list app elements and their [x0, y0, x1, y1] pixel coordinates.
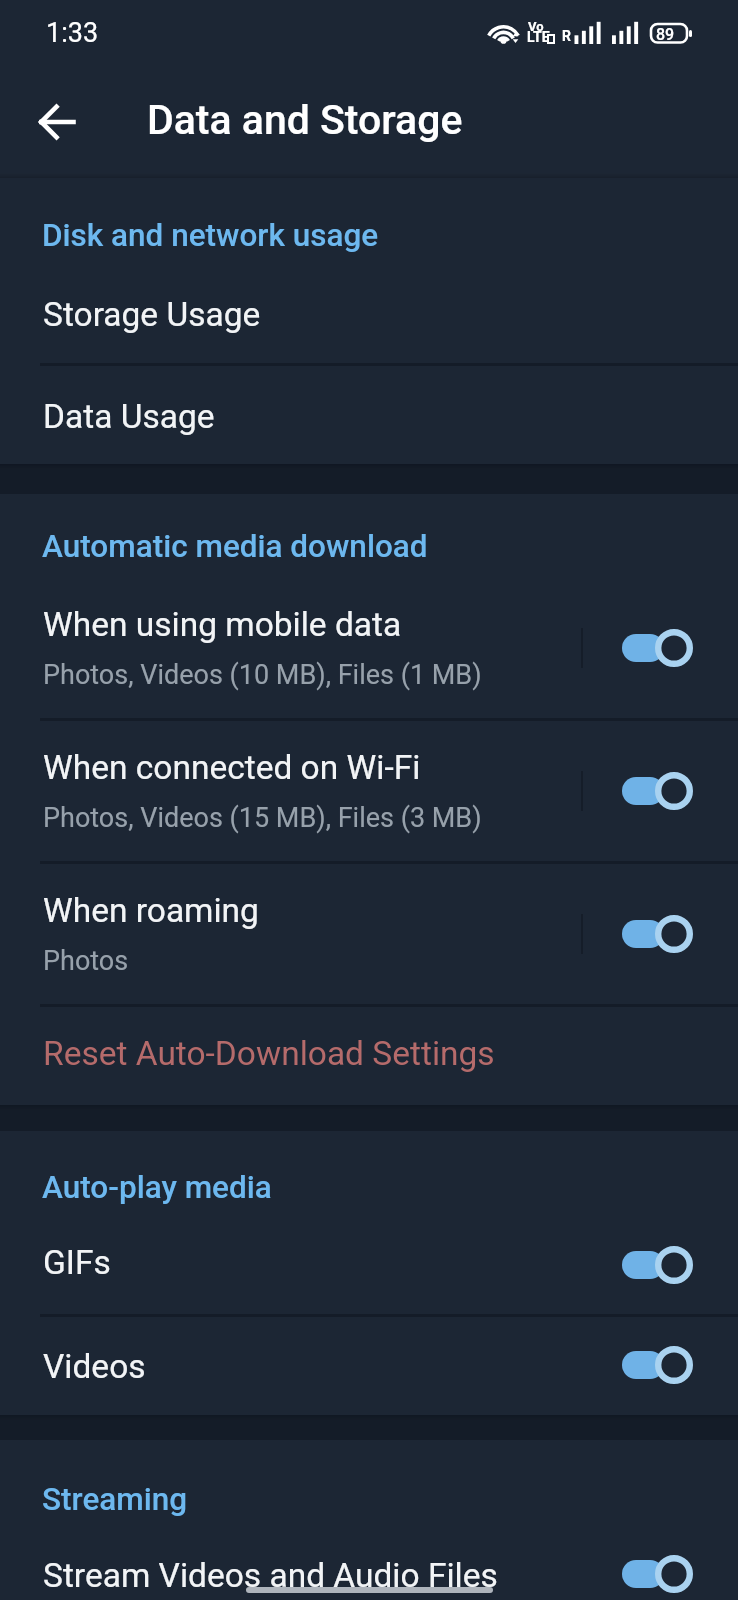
staticText: 1:33 [46, 17, 99, 49]
staticText: GIFs [43, 1243, 622, 1282]
staticText: Streaming [42, 1481, 188, 1518]
button[interactable]: Stream Videos and Audio Files [0, 1524, 738, 1600]
button[interactable]: Stream Videos and Audio Files [622, 1554, 695, 1594]
staticText: LTE [527, 29, 550, 45]
staticText: Stream Videos and Audio Files [43, 1556, 622, 1595]
button[interactable]: GIFs [0, 1215, 738, 1315]
button[interactable]: Reset Auto-Download Settings [0, 1005, 738, 1105]
staticText: Storage Usage [43, 295, 261, 334]
button[interactable]: When roaming [622, 914, 695, 954]
button[interactable]: Storage Usage [0, 264, 738, 364]
button[interactable]: When using mobile data [622, 628, 695, 668]
staticText: Automatic media download [42, 528, 428, 565]
staticText: 89 [656, 25, 675, 44]
button[interactable]: When connected on Wi-Fi [622, 771, 695, 811]
button[interactable]: Data Usage [0, 364, 738, 464]
staticText: When using mobile data [43, 605, 402, 644]
button[interactable]: When connected on Wi-Fi [0, 719, 738, 862]
button[interactable]: Back [20, 85, 94, 159]
button[interactable]: Videos [622, 1345, 695, 1385]
staticText: R [562, 28, 571, 44]
staticText: Reset Auto-Download Settings [43, 1034, 495, 1073]
staticText: When connected on Wi-Fi [43, 748, 421, 787]
staticText: Videos [43, 1347, 622, 1386]
button[interactable]: GIFs [622, 1245, 695, 1285]
staticText: Vo [528, 19, 544, 34]
staticText: Auto-play media [42, 1169, 272, 1206]
button[interactable]: Videos [0, 1315, 738, 1415]
staticText: Data and Storage [147, 96, 463, 144]
staticText: Photos, Videos (10 MB), Files (1 MB) [43, 659, 482, 691]
staticText: When roaming [43, 891, 259, 930]
button[interactable]: When using mobile data [0, 576, 738, 719]
button[interactable]: When roaming [0, 862, 738, 1005]
staticText: Data Usage [43, 397, 215, 436]
staticText: Photos [43, 945, 129, 977]
staticText: Disk and network usage [42, 217, 379, 254]
staticText: Photos, Videos (15 MB), Files (3 MB) [43, 802, 482, 834]
